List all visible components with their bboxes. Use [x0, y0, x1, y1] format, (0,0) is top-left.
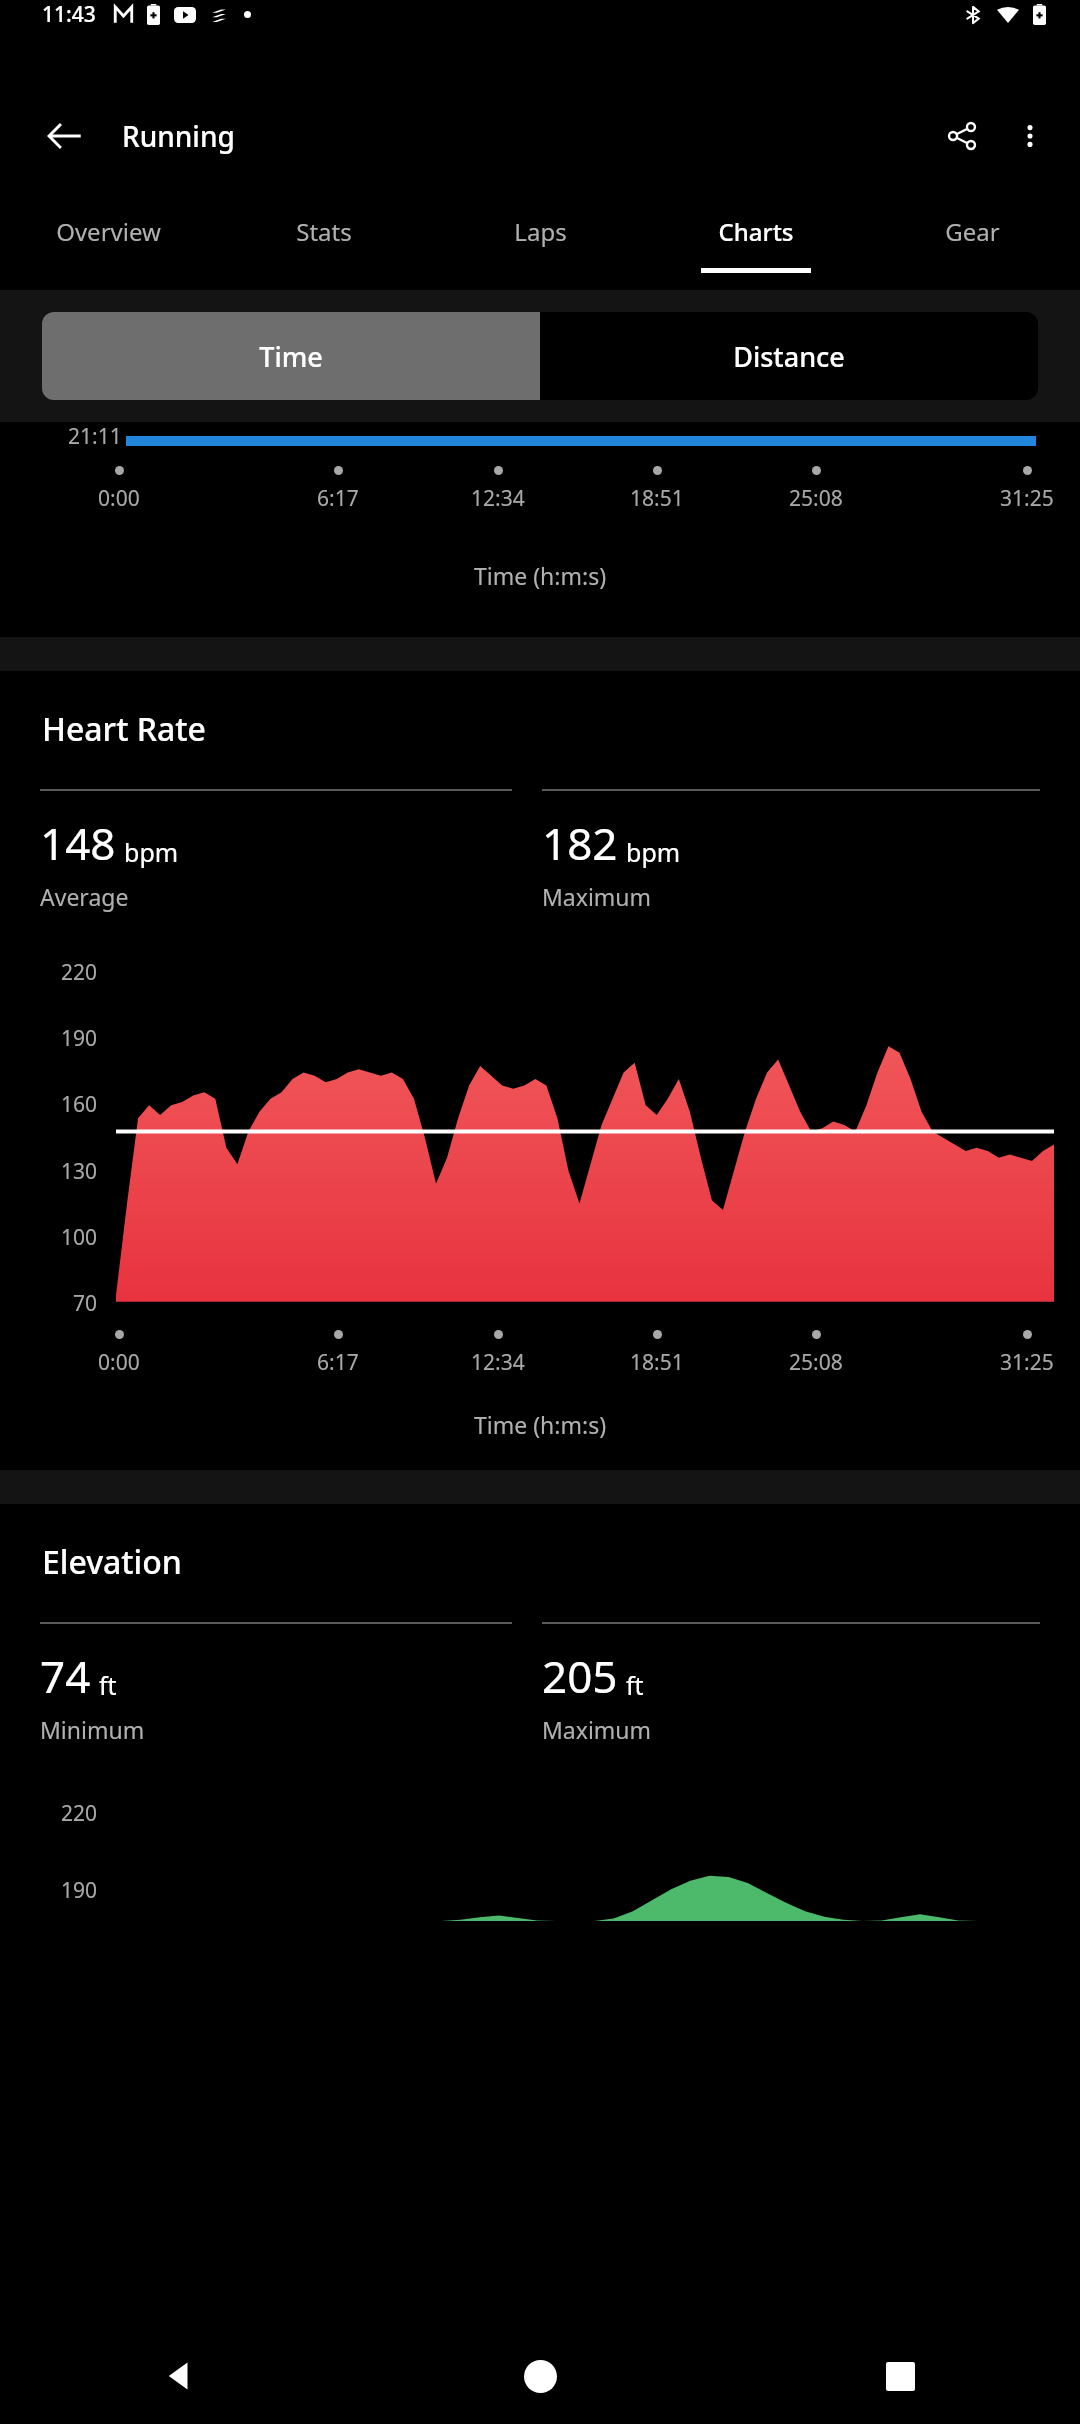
button[interactable]: Back [28, 100, 100, 172]
staticText: bpm [124, 835, 179, 869]
staticText: 74 [40, 1646, 91, 1706]
staticText: Average [40, 881, 129, 912]
staticText: 6:17 [317, 484, 359, 513]
staticText: Overview [56, 215, 161, 248]
button[interactable]: Overview [0, 186, 216, 290]
staticText: 12:34 [471, 1348, 525, 1377]
staticText: Charts [718, 215, 794, 248]
staticText: Time (h:m:s) [474, 1409, 607, 1440]
staticText: 6:17 [317, 1348, 359, 1377]
staticText: 0:00 [98, 484, 140, 513]
staticText: 12:34 [471, 484, 525, 513]
staticText: Running [122, 117, 235, 155]
button[interactable]: Charts [648, 186, 864, 290]
staticText: 130 [61, 1157, 98, 1186]
staticText: 31:25 [1000, 1348, 1054, 1377]
button[interactable]: Stats [216, 186, 432, 290]
staticText: Gear [945, 215, 1000, 248]
staticText: 205 [542, 1646, 618, 1706]
staticText: 21:11 [68, 422, 122, 446]
staticText: Laps [514, 215, 567, 248]
staticText: Time (h:m:s) [474, 560, 607, 591]
button[interactable]: Recent apps [720, 2328, 1080, 2424]
button[interactable]: Gear [864, 186, 1080, 290]
button[interactable]: Time [42, 312, 540, 400]
staticText: Heart Rate [42, 707, 206, 751]
staticText: 182 [542, 813, 618, 873]
staticText: 18:51 [630, 484, 684, 513]
staticText: Time [259, 338, 323, 375]
button[interactable]: Share [926, 100, 998, 172]
staticText: Maximum [542, 1714, 652, 1745]
staticText: 31:25 [1000, 484, 1054, 513]
staticText: Minimum [40, 1714, 145, 1745]
staticText: 25:08 [789, 484, 843, 513]
staticText: 148 [40, 813, 116, 873]
button[interactable]: Distance [540, 312, 1038, 400]
staticText: 11:43 [42, 0, 96, 29]
staticText: Distance [733, 338, 845, 375]
staticText: 0:00 [98, 1348, 140, 1377]
button[interactable]: Home [360, 2328, 720, 2424]
staticText: ft [99, 1668, 117, 1702]
button[interactable]: Back [0, 2328, 360, 2424]
staticText: 190 [61, 1876, 98, 1905]
staticText: 190 [61, 1024, 98, 1053]
staticText: 220 [61, 1799, 98, 1828]
button[interactable]: Laps [432, 186, 648, 290]
staticText: 70 [73, 1289, 98, 1318]
staticText: Elevation [42, 1540, 182, 1584]
staticText: 100 [61, 1223, 98, 1252]
staticText: Stats [296, 215, 352, 248]
staticText: 220 [61, 958, 98, 987]
staticText: ft [626, 1668, 644, 1702]
button[interactable]: More options [998, 104, 1062, 168]
staticText: bpm [626, 835, 681, 869]
staticText: 25:08 [789, 1348, 843, 1377]
staticText: 18:51 [630, 1348, 684, 1377]
staticText: 160 [61, 1090, 98, 1119]
staticText: Maximum [542, 881, 652, 912]
